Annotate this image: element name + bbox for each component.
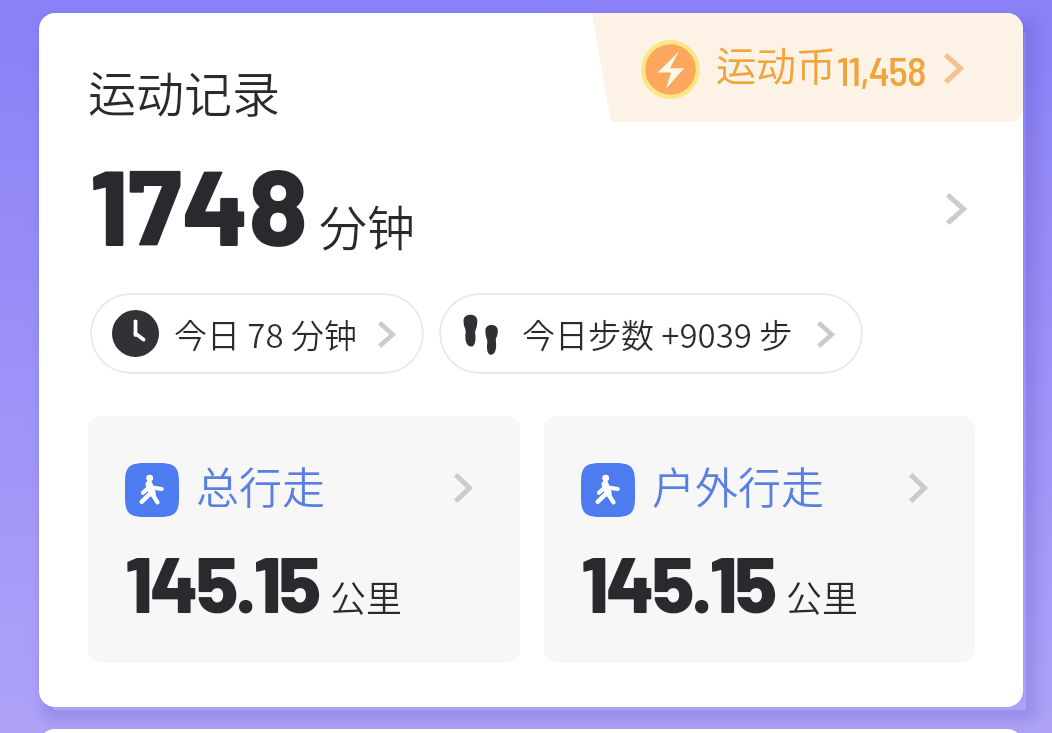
staticText: 145.15 — [581, 535, 775, 629]
staticText: 分钟 — [319, 190, 416, 260]
staticText: 运动记录 — [88, 56, 281, 126]
staticText: 145.15 — [125, 535, 319, 629]
staticText: 总行走 — [196, 454, 325, 516]
button[interactable]: 查看运动记录详情 — [914, 178, 998, 240]
staticText: 户外行走 — [652, 454, 824, 516]
staticText: 公里 — [330, 570, 403, 622]
button[interactable]: 总行走 — [441, 466, 485, 510]
button[interactable]: 总行走 — [88, 416, 520, 663]
staticText: 1748 — [90, 139, 308, 267]
staticText: 11,458 — [837, 45, 926, 94]
button[interactable]: 户外行走 — [544, 416, 975, 663]
button[interactable]: 运动币 11,458 — [929, 40, 979, 96]
button[interactable]: 今日 78 分钟 — [90, 293, 424, 374]
button[interactable]: 今日步数 +9039 步 — [439, 293, 863, 374]
staticText: 公里 — [786, 570, 859, 622]
staticText: 今日 78 分钟 — [174, 310, 357, 358]
staticText: 今日步数 +9039 步 — [522, 310, 793, 358]
staticText: 运动币 — [716, 35, 836, 93]
button[interactable]: 运动币 — [592, 13, 1023, 122]
button[interactable]: 户外行走 — [896, 466, 940, 510]
